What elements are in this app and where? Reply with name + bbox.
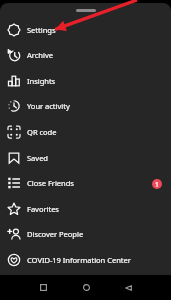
button[interactable]: Back [110,275,146,300]
staticText: Saved [27,153,48,163]
staticText: Archive [27,50,53,60]
button[interactable]: Recents [25,275,61,300]
staticText: Close Friends [27,178,74,188]
button[interactable]: Saved [0,145,171,171]
staticText: QR code [27,127,57,137]
button[interactable]: Home [68,275,104,300]
staticText: COVID-19 Information Center [27,255,131,265]
staticText: Discover People [27,229,84,239]
staticText: Insights [27,76,56,86]
staticText: Your activity [27,101,70,111]
staticText: Settings [27,25,56,35]
button[interactable]: Favorites [0,196,171,222]
button[interactable]: Your activity [0,93,171,119]
button[interactable]: Insights [0,68,171,94]
button[interactable]: COVID-19 Information Center [0,247,171,273]
button[interactable]: Discover People [0,221,171,247]
staticText: Favorites [27,204,59,214]
button[interactable]: Archive [0,42,171,68]
button[interactable]: Settings [0,17,171,43]
button[interactable]: QR code [0,119,171,145]
button[interactable]: Close Friends [0,170,171,196]
staticText: 1 [155,180,159,189]
